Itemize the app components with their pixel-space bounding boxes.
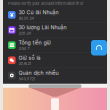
- button[interactable]: 30 Củ lãi Nhuận: [8, 7, 107, 22]
- staticText: 60/21.24: [19, 16, 35, 21]
- staticText: 20/6.21: [19, 61, 32, 66]
- staticText: 2/31.24: [19, 31, 32, 36]
- button[interactable]: Tổng tiền giữ: [8, 38, 107, 52]
- staticText: Giữ số lá: [19, 54, 41, 61]
- staticText: Please verify your account information f…: [8, 1, 83, 6]
- button[interactable]: Quản dịch nhiều: [8, 68, 107, 83]
- staticText: 3.54 T: [19, 46, 31, 51]
- staticText: 30 lượng Lãi Nhuận: [19, 24, 67, 31]
- staticText: 540/1721: [19, 76, 36, 81]
- button[interactable]: Customer support: [91, 40, 107, 55]
- staticText: 30 Củ lãi Nhuận: [19, 9, 59, 15]
- button[interactable]: Giữ số lá: [8, 53, 107, 68]
- staticText: Tổng tiền giữ: [19, 39, 51, 46]
- button[interactable]: 30 lượng Lãi Nhuận: [8, 23, 107, 37]
- staticText: Quản dịch nhiều: [19, 70, 59, 76]
